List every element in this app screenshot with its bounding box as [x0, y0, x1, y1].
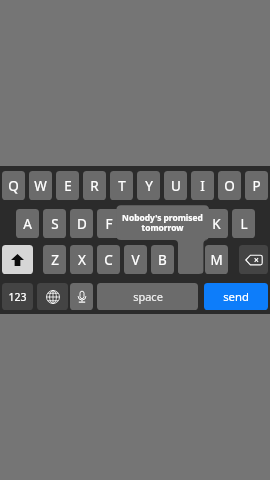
- button[interactable]: V: [124, 245, 147, 274]
- button[interactable]: G: [124, 209, 147, 238]
- staticText: K: [212, 215, 221, 233]
- button[interactable]: space: [97, 283, 198, 310]
- staticText: U: [171, 177, 181, 195]
- staticText: A: [23, 215, 32, 233]
- button[interactable]: F: [97, 209, 120, 238]
- staticText: H: [157, 215, 168, 233]
- button[interactable]: B: [151, 245, 174, 274]
- staticText: P: [252, 177, 261, 195]
- button[interactable]: send: [204, 283, 268, 310]
- button[interactable]: C: [97, 245, 120, 274]
- button[interactable]: E: [56, 171, 79, 200]
- staticText: space: [133, 289, 163, 304]
- button[interactable]: Shift: [2, 245, 33, 274]
- button[interactable]: U: [164, 171, 187, 200]
- button[interactable]: Y: [137, 171, 160, 200]
- staticText: B: [158, 251, 167, 269]
- button[interactable]: L: [232, 209, 255, 238]
- button[interactable]: K: [205, 209, 228, 238]
- button[interactable]: X: [70, 245, 93, 274]
- staticText: S: [51, 215, 59, 233]
- button[interactable]: P: [245, 171, 268, 200]
- staticText: D: [77, 215, 87, 233]
- staticText: J: [188, 215, 192, 233]
- button[interactable]: Q: [2, 171, 25, 200]
- button[interactable]: 123: [2, 283, 33, 310]
- staticText: X: [78, 251, 86, 269]
- button[interactable]: Nobody's promised tomorrow: [116, 205, 209, 240]
- staticText: 123: [8, 290, 27, 304]
- button[interactable]: Backspace: [239, 245, 268, 274]
- staticText: Z: [51, 251, 59, 269]
- staticText: G: [131, 215, 141, 233]
- button[interactable]: I: [191, 171, 214, 200]
- button[interactable]: O: [218, 171, 241, 200]
- button[interactable]: Voice input: [70, 283, 93, 310]
- staticText: L: [240, 215, 248, 233]
- staticText: I: [200, 177, 205, 195]
- button[interactable]: Change keyboard: [37, 283, 68, 310]
- button[interactable]: S: [43, 209, 66, 238]
- staticText: F: [105, 215, 113, 233]
- staticText: Nobody's promised tomorrow: [122, 212, 203, 233]
- staticText: send: [223, 289, 249, 304]
- staticText: C: [104, 251, 113, 269]
- button[interactable]: Z: [43, 245, 66, 274]
- button[interactable]: D: [70, 209, 93, 238]
- button[interactable]: T: [110, 171, 133, 200]
- staticText: W: [34, 177, 47, 195]
- button[interactable]: W: [29, 171, 52, 200]
- button[interactable]: A: [16, 209, 39, 238]
- staticText: V: [131, 251, 140, 269]
- staticText: T: [118, 177, 126, 195]
- button[interactable]: J: [178, 209, 201, 238]
- staticText: M: [210, 251, 223, 269]
- staticText: E: [64, 177, 72, 195]
- button[interactable]: R: [83, 171, 106, 200]
- staticText: Y: [145, 177, 153, 195]
- button[interactable]: H: [151, 209, 174, 238]
- staticText: O: [224, 177, 235, 195]
- staticText: Q: [8, 177, 19, 195]
- staticText: R: [90, 177, 99, 195]
- button[interactable]: M: [205, 245, 228, 274]
